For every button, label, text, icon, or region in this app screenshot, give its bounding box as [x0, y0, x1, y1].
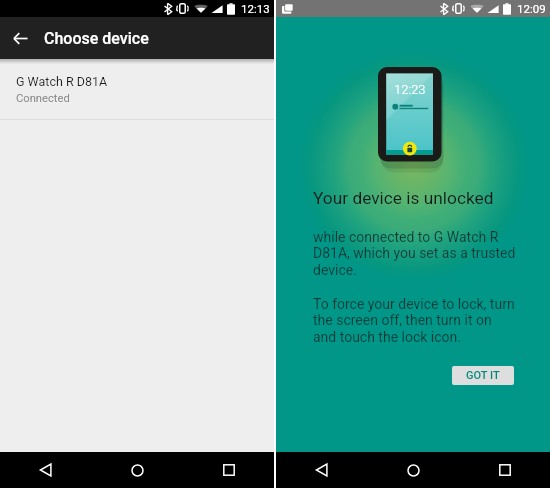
button[interactable]: Back [276, 452, 368, 488]
button[interactable]: Recent apps [459, 452, 550, 488]
staticText: GOT IT [466, 369, 500, 382]
button[interactable]: Home [92, 452, 183, 488]
staticText: while connected to G Watch R D81A, which… [313, 229, 516, 278]
button[interactable]: Home [368, 452, 459, 488]
staticText: To force your device to lock, turn the s… [313, 296, 515, 345]
button[interactable]: G Watch R D81A [0, 59, 274, 119]
staticText: Connected [16, 92, 70, 105]
staticText: 12:23 [394, 82, 426, 97]
button[interactable]: Recent apps [183, 452, 274, 488]
button[interactable]: GOT IT [452, 366, 514, 385]
staticText: Choose device [44, 29, 149, 48]
other: Screenshot captured [282, 2, 295, 15]
staticText: G Watch R D81A [16, 74, 108, 89]
staticText: Your device is unlocked [313, 188, 494, 208]
button[interactable]: Back [0, 452, 92, 488]
button[interactable]: Back [0, 18, 40, 58]
staticText: 12:09 [517, 2, 546, 15]
staticText: 12:13 [241, 2, 270, 15]
